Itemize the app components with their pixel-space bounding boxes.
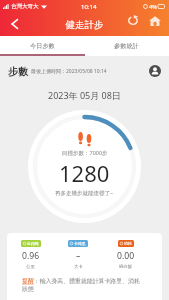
staticText: 走距離	[27, 241, 39, 246]
staticText: 10:14	[81, 3, 97, 11]
staticText: 今日步數	[30, 42, 55, 50]
staticText: 提醒：輸入身高、體重就能計算卡路里、消耗狀態	[22, 277, 143, 292]
button[interactable]: Refresh	[126, 13, 139, 26]
staticText: 最後上傳時間：2023/05/08 10:14	[31, 68, 107, 75]
button[interactable]: Account	[149, 65, 161, 77]
staticText: 碗白飯	[119, 264, 133, 270]
button[interactable]: Home	[148, 14, 162, 28]
staticText: 1280	[59, 158, 110, 188]
staticText: 消耗	[124, 241, 132, 246]
staticText: 參數統計	[114, 42, 139, 50]
staticText: 目標步數：7000步	[62, 149, 108, 157]
staticText: 台灣大哥大	[11, 3, 39, 10]
staticText: 卡路里	[74, 241, 86, 246]
staticText: 4%	[149, 3, 157, 10]
staticText: –	[76, 250, 81, 262]
staticText: 2023年 05月 08日	[48, 89, 121, 101]
button[interactable]: Back	[5, 15, 23, 33]
staticText: 大卡	[74, 264, 83, 270]
staticText: 0.96	[22, 250, 40, 262]
staticText: 0.00	[117, 250, 135, 262]
staticText: 再多走幾步就能達標了~	[55, 189, 114, 197]
staticText: 健走計步	[0, 19, 169, 31]
button[interactable]: 今日步數	[0, 36, 84, 56]
button[interactable]: 參數統計	[84, 36, 169, 56]
staticText: 公里	[26, 264, 35, 270]
staticText: 步數	[8, 65, 28, 78]
